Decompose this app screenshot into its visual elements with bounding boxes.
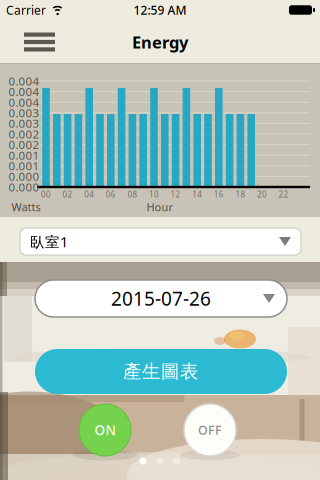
staticText: 00 bbox=[41, 189, 51, 200]
staticText: 0.000 bbox=[8, 169, 39, 184]
staticText: 08 bbox=[127, 189, 137, 200]
button[interactable]: 臥室1 bbox=[20, 228, 301, 255]
staticText: Carrier bbox=[6, 2, 46, 18]
staticText: 0.001 bbox=[8, 147, 39, 163]
staticText: 0.000 bbox=[8, 179, 39, 195]
staticText: 16 bbox=[214, 189, 224, 200]
button[interactable]: ON bbox=[79, 404, 131, 456]
staticText: 20 bbox=[257, 189, 267, 200]
staticText: 0.002 bbox=[8, 137, 39, 152]
staticText: 02 bbox=[63, 189, 73, 200]
staticText: 0.004 bbox=[8, 84, 39, 99]
staticText: 產生圖表 bbox=[123, 360, 199, 383]
staticText: 06 bbox=[106, 189, 116, 200]
staticText: 12 bbox=[171, 189, 181, 200]
button[interactable]: 2015-07-26 bbox=[35, 280, 287, 317]
staticText: 0.001 bbox=[8, 158, 39, 174]
staticText: 0.004 bbox=[8, 73, 39, 89]
button[interactable]: OFF bbox=[184, 404, 236, 456]
staticText: 2015-07-26 bbox=[111, 286, 211, 311]
staticText: 12:59 AM bbox=[133, 2, 186, 18]
staticText: 0.004 bbox=[8, 94, 39, 110]
staticText: Hour bbox=[146, 199, 173, 214]
staticText: 04 bbox=[84, 189, 94, 200]
staticText: OFF bbox=[198, 421, 222, 438]
staticText: Watts bbox=[11, 199, 40, 214]
staticText: 10 bbox=[149, 189, 159, 200]
staticText: 0.002 bbox=[8, 126, 39, 142]
staticText: 臥室1 bbox=[30, 232, 68, 251]
button[interactable]: Menu bbox=[0, 21, 55, 62]
button[interactable]: 產生圖表 bbox=[35, 349, 287, 394]
staticText: 0.003 bbox=[8, 105, 39, 121]
staticText: 14 bbox=[192, 189, 202, 200]
staticText: Energy bbox=[132, 31, 188, 53]
staticText: 0.003 bbox=[8, 116, 39, 131]
staticText: ON bbox=[94, 421, 115, 439]
staticText: 18 bbox=[235, 189, 245, 200]
staticText: 22 bbox=[279, 189, 289, 200]
